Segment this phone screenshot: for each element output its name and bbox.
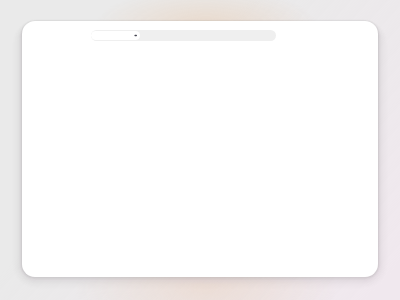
button[interactable]: Active tab <box>91 30 140 41</box>
button[interactable]: Tab strip <box>91 30 276 41</box>
